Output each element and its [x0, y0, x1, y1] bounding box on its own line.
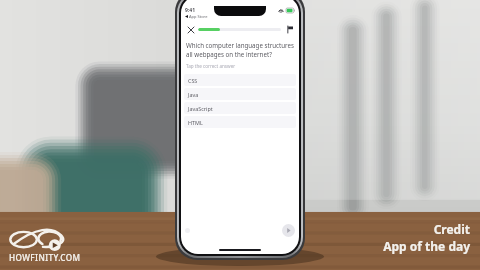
button[interactable]: Report question	[284, 24, 295, 35]
staticText: CSS	[188, 77, 198, 84]
button[interactable]: Hint	[185, 228, 190, 233]
button[interactable]: CSS	[184, 74, 296, 86]
button[interactable]: Close	[185, 24, 196, 35]
staticText: Java	[188, 91, 199, 98]
staticText: App Store	[189, 14, 208, 19]
button[interactable]: Continue	[282, 224, 295, 237]
staticText: HOWFINITY.COM	[9, 252, 81, 263]
staticText: Credit	[433, 221, 470, 237]
staticText: App of the day	[383, 238, 470, 254]
button[interactable]: HTML	[184, 116, 296, 128]
staticText: HTML	[188, 119, 203, 126]
staticText: Which computer language structures all w…	[186, 41, 294, 59]
staticText: Tap the correct answer	[186, 63, 236, 69]
staticText: 9:41	[185, 7, 195, 14]
button[interactable]: JavaScript	[184, 102, 296, 114]
staticText: JavaScript	[188, 105, 213, 112]
button[interactable]: Java	[184, 88, 296, 100]
button[interactable]: Howfinity.com	[8, 222, 84, 266]
